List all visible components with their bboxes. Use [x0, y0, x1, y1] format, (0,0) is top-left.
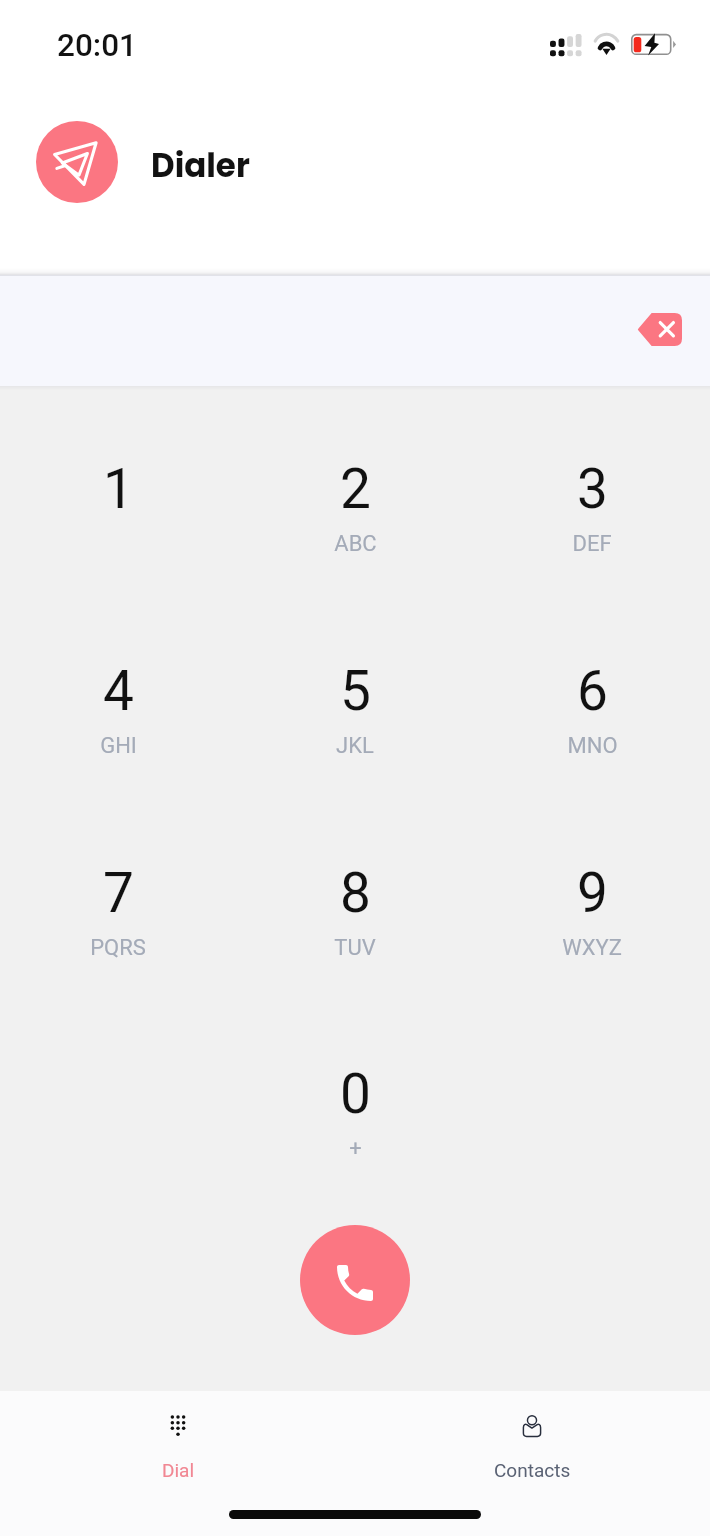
staticText: 4: [103, 659, 134, 723]
button[interactable]: Dial: [88, 1399, 268, 1491]
button[interactable]: 8: [237, 795, 473, 985]
staticText: TUV: [334, 935, 376, 961]
staticText: WXYZ: [562, 935, 622, 961]
staticText: 20:01: [57, 27, 137, 64]
staticText: 7: [103, 861, 134, 925]
button[interactable]: Backspace: [628, 303, 692, 355]
staticText: 3: [577, 457, 608, 521]
staticText: 9: [577, 861, 608, 925]
staticText: 6: [577, 659, 608, 723]
staticText: Contacts: [494, 1459, 571, 1481]
staticText: MNO: [567, 733, 618, 759]
staticText: JKL: [336, 733, 374, 759]
button[interactable]: 4: [0, 593, 236, 783]
button[interactable]: 7: [0, 795, 236, 985]
staticText: ABC: [334, 531, 377, 557]
staticText: PQRS: [90, 935, 146, 961]
staticText: 2: [340, 457, 371, 521]
button[interactable]: Call: [300, 1225, 410, 1335]
staticText: 0: [340, 1062, 371, 1126]
staticText: 5: [340, 659, 371, 723]
staticText: +: [349, 1136, 362, 1162]
staticText: Dial: [162, 1459, 195, 1481]
button[interactable]: 5: [237, 593, 473, 783]
button[interactable]: 6: [474, 593, 710, 783]
button[interactable]: 2: [237, 391, 473, 581]
button[interactable]: 9: [474, 795, 710, 985]
button[interactable]: 1: [0, 391, 236, 581]
button[interactable]: Contacts: [442, 1399, 622, 1491]
staticText: DEF: [572, 531, 612, 557]
staticText: 8: [340, 861, 371, 925]
button[interactable]: 0: [237, 996, 473, 1186]
button[interactable]: 3: [474, 391, 710, 581]
staticText: 1: [103, 457, 134, 521]
staticText: GHI: [100, 733, 137, 759]
staticText: Dialer: [151, 143, 250, 189]
